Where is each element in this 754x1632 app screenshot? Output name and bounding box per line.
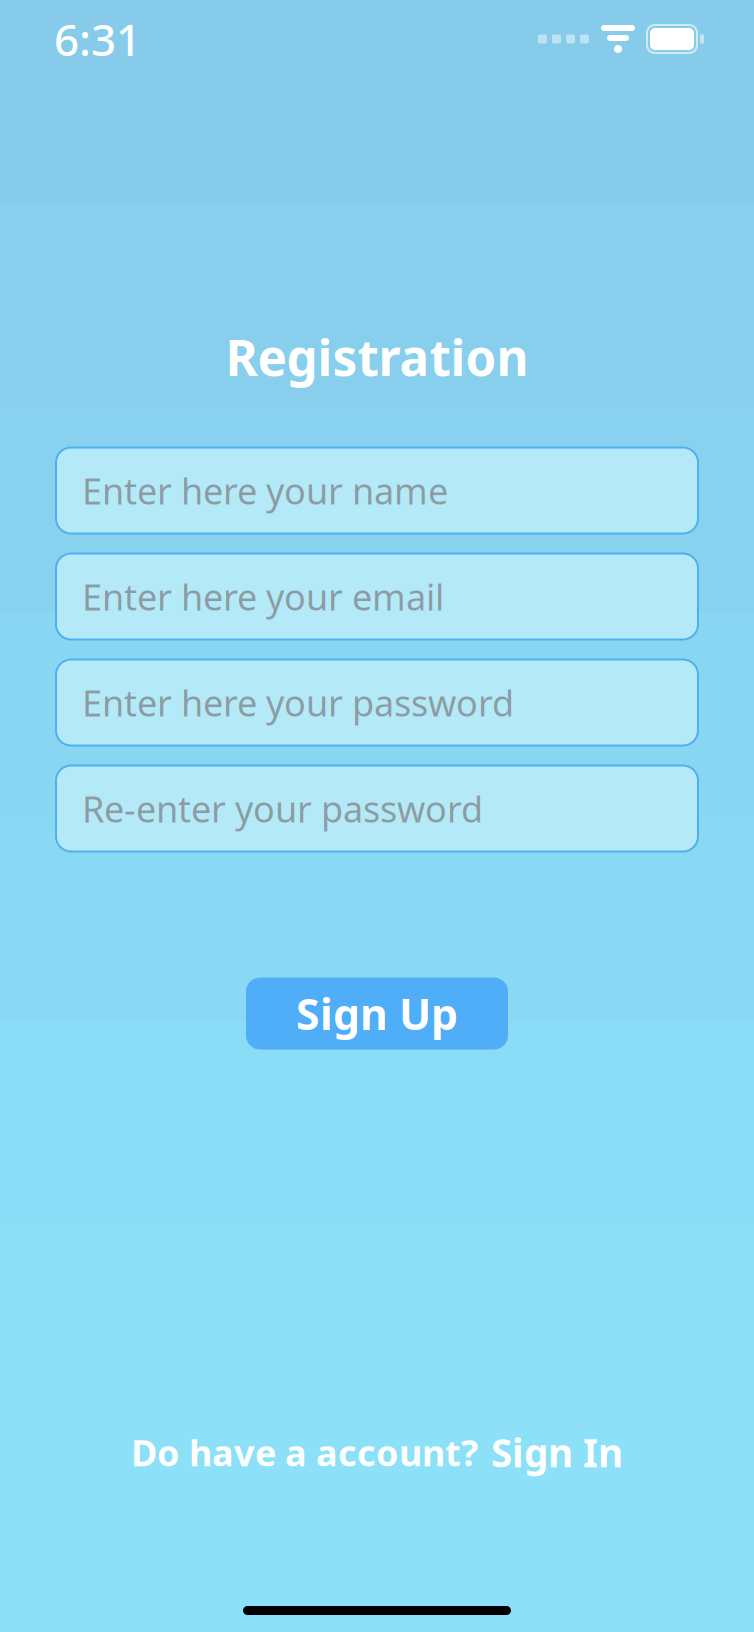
staticText: Enter here your name — [82, 467, 448, 514]
button[interactable]: Enter here your email — [56, 553, 698, 639]
staticText: Enter here your password — [82, 679, 514, 726]
staticText: Registration — [225, 324, 528, 389]
staticText: 6:31 — [54, 10, 141, 68]
button[interactable]: Sign Up — [246, 977, 508, 1049]
button[interactable]: Enter here your password — [56, 659, 698, 745]
button[interactable]: Do have a account? — [131, 1427, 623, 1478]
staticText: Sign Up — [296, 985, 458, 1042]
staticText: Re-enter your password — [82, 785, 483, 832]
button[interactable]: Re-enter your password — [56, 765, 698, 851]
staticText: Sign In — [491, 1427, 623, 1478]
button[interactable]: Enter here your name — [56, 447, 698, 533]
staticText: Enter here your email — [82, 573, 444, 620]
staticText: Do have a account? — [131, 1428, 478, 1476]
